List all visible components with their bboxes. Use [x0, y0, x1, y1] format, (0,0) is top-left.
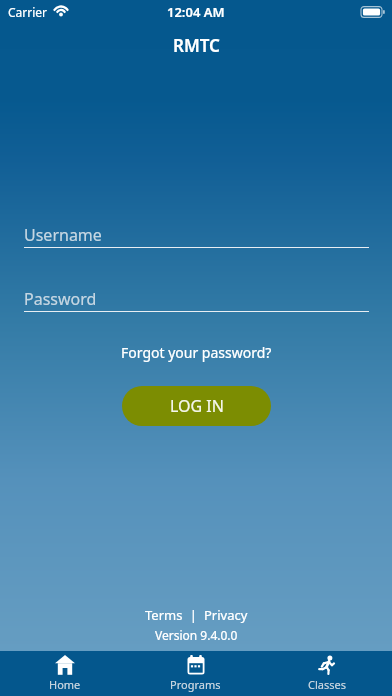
staticText: Home: [49, 677, 81, 692]
staticText: Classes: [308, 677, 346, 692]
staticText: Programs: [170, 677, 221, 692]
staticText: 12:04 AM: [167, 3, 225, 21]
button[interactable]: LOG IN: [122, 386, 271, 426]
staticText: LOG IN: [170, 395, 224, 417]
button[interactable]: Classes: [261, 651, 392, 692]
button[interactable]: Forgot your password?: [121, 343, 272, 362]
staticText: Password: [24, 288, 97, 310]
button[interactable]: Home: [0, 651, 130, 692]
staticText: Terms: [145, 606, 183, 624]
staticText: Carrier: [8, 4, 48, 20]
staticText: Forgot your password?: [121, 343, 272, 362]
button[interactable]: Terms: [145, 606, 183, 624]
staticText: Version 9.4.0.0: [155, 627, 238, 643]
button[interactable]: Privacy: [204, 606, 248, 624]
button[interactable]: Password: [24, 288, 369, 312]
button[interactable]: Programs: [130, 651, 261, 692]
staticText: RMTC: [173, 34, 220, 57]
staticText: Privacy: [204, 606, 248, 624]
button[interactable]: Username: [24, 224, 369, 248]
staticText: Username: [24, 224, 102, 246]
staticText: |: [183, 606, 204, 624]
